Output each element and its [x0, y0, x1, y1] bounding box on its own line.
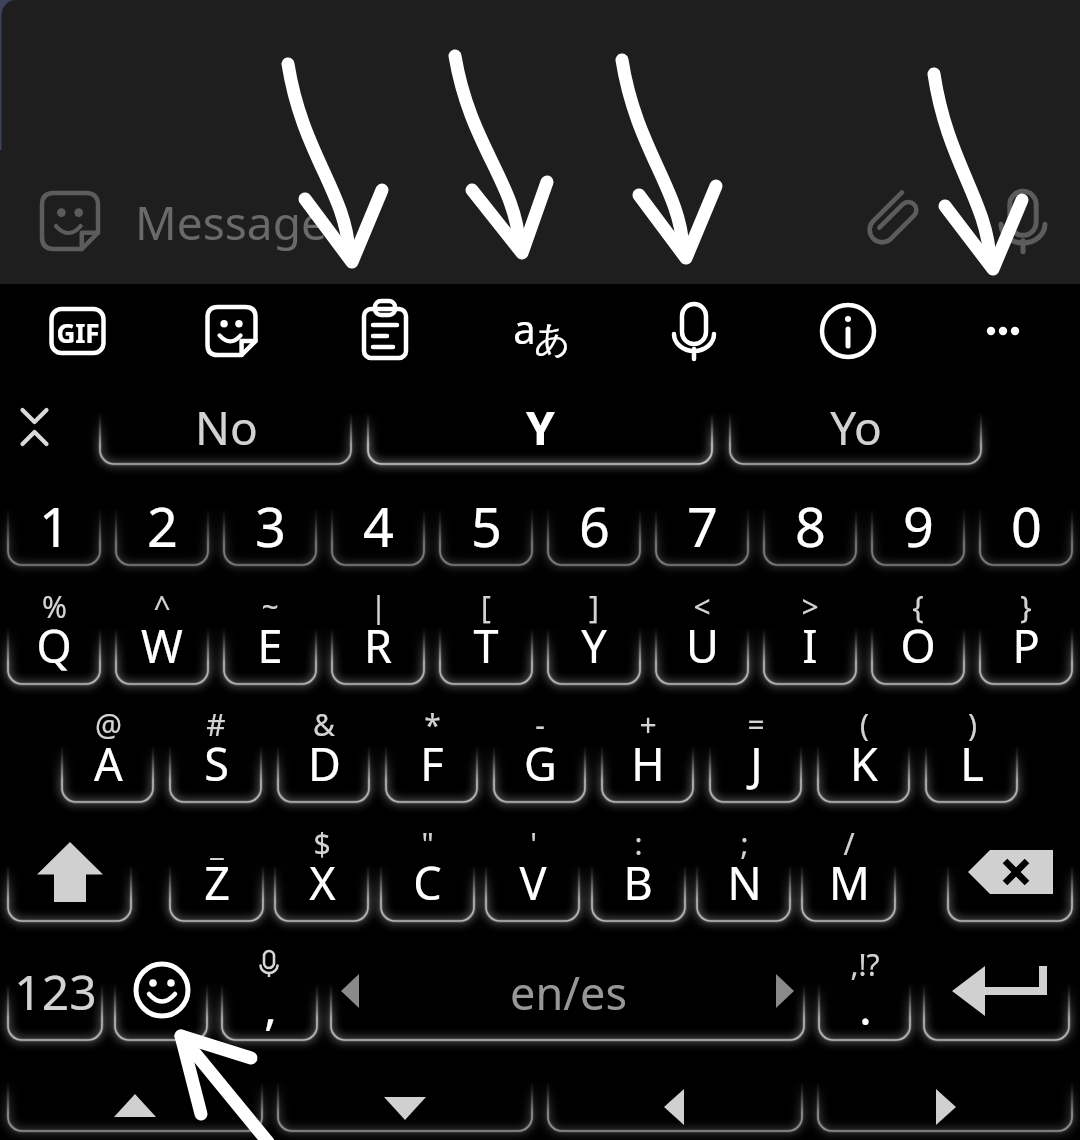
staticText: P [1012, 615, 1040, 676]
button[interactable] [482, 825, 583, 921]
button[interactable]: Backspace [944, 825, 1076, 921]
staticText: F [420, 733, 444, 794]
staticText: A [94, 733, 123, 794]
staticText: 7 [687, 489, 718, 563]
button[interactable]: Period [815, 944, 914, 1040]
staticText: L [960, 733, 984, 794]
button[interactable] [364, 390, 716, 468]
staticText: K [850, 733, 878, 794]
button[interactable]: Keyboard info [800, 288, 896, 380]
button[interactable] [271, 825, 372, 921]
staticText: GIF [56, 315, 100, 350]
button[interactable] [328, 470, 428, 565]
button[interactable] [4, 470, 104, 565]
button[interactable] [976, 470, 1076, 565]
button[interactable] [490, 706, 589, 802]
button[interactable]: GIF keyboard [30, 288, 126, 380]
button[interactable] [112, 588, 212, 684]
button[interactable]: Clipboard [338, 288, 434, 380]
button[interactable]: Message input field [130, 170, 840, 272]
staticText: T [473, 615, 499, 676]
button[interactable]: Stickers [184, 288, 280, 380]
staticText: [ [481, 586, 491, 627]
staticText: E [257, 615, 283, 676]
staticText: Z [204, 852, 230, 913]
button[interactable] [588, 825, 689, 921]
staticText: en/es [510, 962, 627, 1023]
button[interactable]: Space [327, 944, 808, 1040]
staticText: 8 [795, 489, 826, 563]
button[interactable] [798, 825, 899, 921]
button[interactable] [706, 706, 805, 802]
staticText: ( [860, 704, 869, 745]
button[interactable]: Move left [544, 1060, 806, 1140]
staticText: 123 [14, 959, 97, 1024]
button[interactable]: Enter [920, 944, 1073, 1040]
staticText: ; [740, 823, 749, 864]
staticText: Y [526, 396, 555, 459]
button[interactable] [96, 390, 355, 468]
button[interactable]: Change language [492, 288, 588, 380]
staticText: 1 [39, 489, 70, 563]
button[interactable]: Move up [4, 1060, 266, 1140]
staticText: Q [36, 615, 72, 676]
staticText: : [634, 823, 643, 864]
button[interactable]: Comma [218, 944, 321, 1040]
button[interactable] [274, 706, 373, 802]
button[interactable] [652, 470, 752, 565]
button[interactable]: Shift [4, 825, 135, 921]
button[interactable] [652, 588, 752, 684]
button[interactable] [544, 470, 644, 565]
staticText: 0 [1011, 489, 1042, 563]
button[interactable] [868, 588, 968, 684]
button[interactable]: Attach file [845, 170, 945, 272]
staticText: G [524, 733, 557, 794]
button[interactable] [726, 390, 985, 468]
button[interactable] [436, 470, 536, 565]
staticText: U [686, 615, 719, 676]
staticText: B [623, 852, 653, 913]
staticText: 4 [363, 489, 394, 563]
button[interactable] [976, 588, 1076, 684]
button[interactable] [4, 588, 104, 684]
button[interactable]: Emoji [111, 944, 211, 1040]
button[interactable] [693, 825, 794, 921]
staticText: W [141, 615, 183, 676]
button[interactable]: Hide suggestion bar [6, 390, 70, 468]
button[interactable] [760, 470, 860, 565]
button[interactable]: Voice typing [646, 288, 742, 380]
button[interactable]: Voice message [975, 170, 1075, 272]
button[interactable] [112, 470, 212, 565]
button[interactable] [166, 825, 267, 921]
button[interactable] [544, 588, 644, 684]
button[interactable]: Move right [814, 1060, 1076, 1140]
button[interactable] [328, 588, 428, 684]
button[interactable] [760, 588, 860, 684]
button[interactable] [377, 825, 478, 921]
button[interactable] [220, 470, 320, 565]
staticText: ) [968, 704, 977, 745]
button[interactable] [382, 706, 481, 802]
staticText: M [829, 852, 870, 913]
button[interactable] [436, 588, 536, 684]
staticText: J [750, 733, 763, 794]
staticText: ] [589, 586, 599, 627]
staticText: あ [534, 316, 571, 361]
button[interactable] [868, 470, 968, 565]
button[interactable] [58, 706, 157, 802]
button[interactable] [220, 588, 320, 684]
staticText: , [264, 974, 277, 1039]
staticText: _ [210, 823, 224, 864]
staticText: X [309, 852, 336, 913]
button[interactable]: Switch to numbers [4, 944, 106, 1040]
button[interactable] [166, 706, 265, 802]
button[interactable] [598, 706, 697, 802]
button[interactable] [814, 706, 913, 802]
staticText: No [195, 396, 258, 459]
button[interactable]: Move down [274, 1060, 536, 1140]
staticText: " [421, 823, 434, 864]
button[interactable]: Choose sticker [20, 170, 120, 272]
staticText: @ [95, 704, 122, 745]
button[interactable] [922, 706, 1021, 802]
button[interactable]: More options [955, 288, 1051, 380]
